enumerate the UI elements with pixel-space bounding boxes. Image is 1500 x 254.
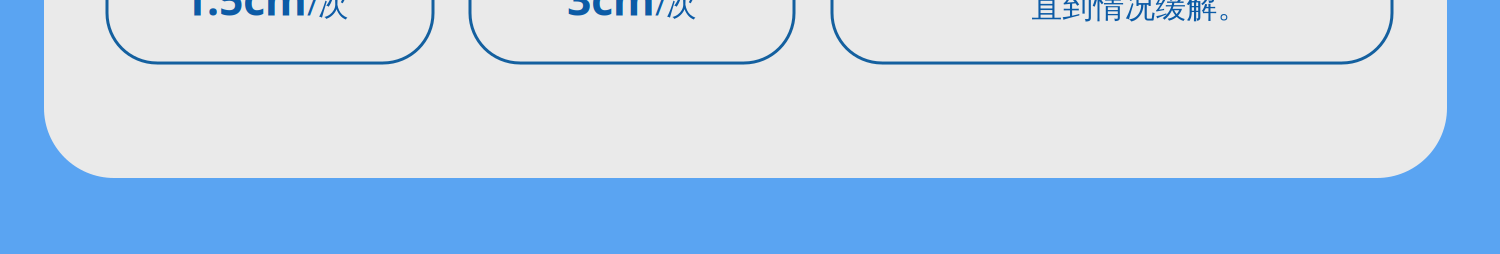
button[interactable]: 1.5cm [107, 0, 433, 63]
button[interactable]: 直到情况缓解。 [832, 0, 1392, 63]
staticText: 直到情况缓解。 [1031, 0, 1248, 26]
button[interactable]: 3cm [470, 0, 794, 63]
staticText: /次 [655, 0, 697, 24]
staticText: /次 [307, 0, 349, 24]
staticText: 1.5cm [183, 0, 307, 27]
staticText: 3cm [567, 0, 655, 27]
